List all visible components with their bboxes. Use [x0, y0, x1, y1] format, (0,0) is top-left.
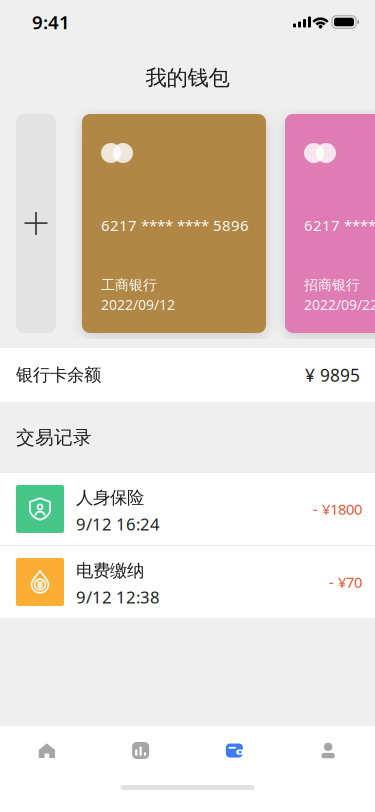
button[interactable]: Wallet — [187, 726, 281, 775]
button[interactable]: 人身保险 — [0, 473, 375, 545]
staticText: 9/12 12:38 — [76, 586, 160, 608]
staticText: 2022/09/22 — [304, 295, 375, 314]
staticText: - ¥70 — [329, 572, 362, 592]
staticText: 交易记录 — [16, 426, 92, 449]
staticText: 工商银行 — [101, 276, 157, 294]
button[interactable]: Home — [0, 726, 94, 775]
staticText: 9/12 16:24 — [76, 513, 160, 535]
button[interactable]: 6217 **** **** 1234 — [285, 114, 375, 333]
button[interactable]: Add card — [16, 114, 56, 333]
staticText: 6217 **** **** 5896 — [101, 215, 249, 235]
staticText: 招商银行 — [304, 276, 360, 294]
staticText: ¥ 9895 — [305, 363, 360, 387]
button[interactable]: 6217 **** **** 5896 — [82, 114, 266, 333]
button[interactable]: Statistics — [94, 726, 188, 775]
staticText: 人身保险 — [76, 487, 144, 508]
button[interactable]: 电费缴纳 — [0, 546, 375, 618]
staticText: 我的钱包 — [145, 65, 229, 91]
staticText: 电费缴纳 — [76, 560, 144, 581]
staticText: 6217 **** **** 1234 — [304, 215, 375, 235]
staticText: - ¥1800 — [313, 499, 362, 519]
staticText: 9:41 — [32, 9, 70, 35]
staticText: 银行卡余额 — [16, 364, 101, 386]
staticText: 2022/09/12 — [101, 295, 175, 314]
button[interactable]: Profile — [281, 726, 375, 775]
